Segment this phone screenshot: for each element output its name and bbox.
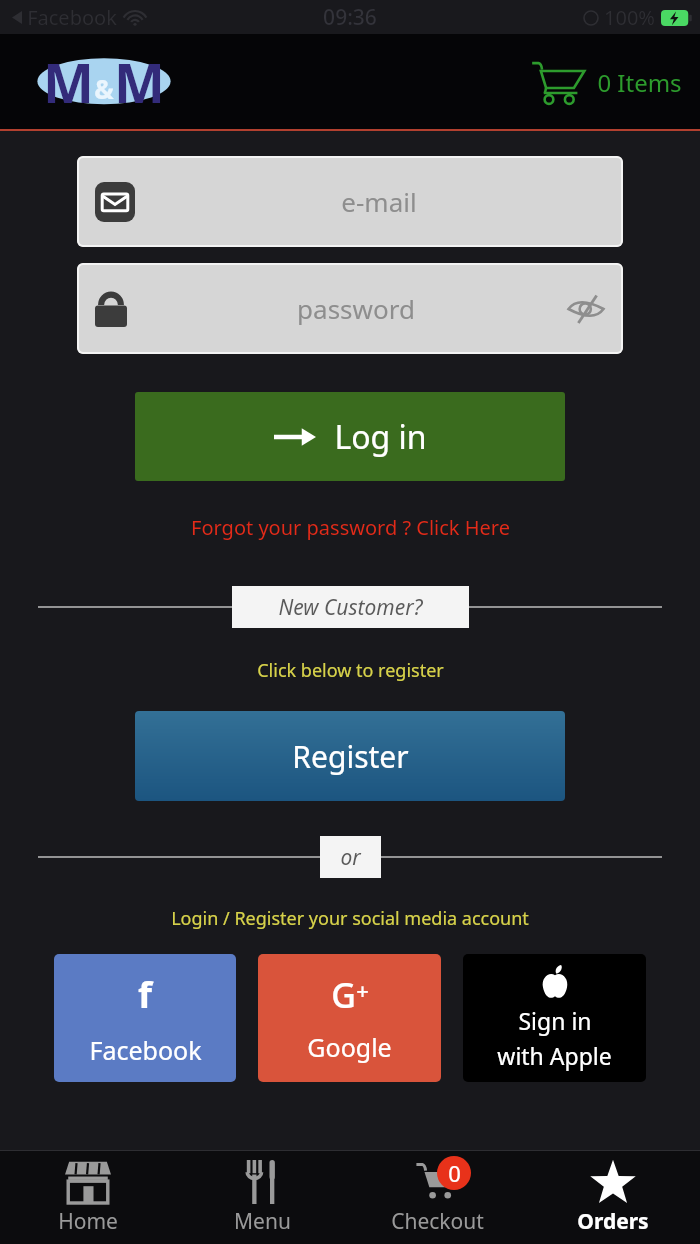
button[interactable]: e-mail xyxy=(77,156,623,247)
button[interactable]: Forgot your password ? Click Here xyxy=(185,512,516,543)
staticText: with Apple xyxy=(497,1040,612,1071)
staticText: e-mail xyxy=(153,184,605,219)
button[interactable]: 0 Items xyxy=(527,55,686,109)
staticText: Log in xyxy=(334,415,427,459)
staticText: M xyxy=(114,45,165,119)
button[interactable]: 0 xyxy=(350,1151,525,1244)
button[interactable]: Orders xyxy=(525,1151,700,1244)
button[interactable]: Register xyxy=(135,711,565,801)
staticText: + xyxy=(356,975,369,1005)
staticText: Checkout xyxy=(391,1207,484,1236)
staticText: Login / Register your social media accou… xyxy=(171,906,529,931)
staticText: 100% xyxy=(604,4,655,31)
staticText: & xyxy=(94,71,114,106)
button[interactable]: Show password xyxy=(567,295,605,323)
staticText: Google xyxy=(307,1030,392,1064)
staticText: 09:36 xyxy=(323,3,377,32)
staticText: password xyxy=(145,291,567,326)
staticText: Click below to register xyxy=(257,658,444,683)
button[interactable]: f xyxy=(54,954,236,1082)
staticText: Register xyxy=(292,736,409,777)
button[interactable]: Menu xyxy=(175,1151,350,1244)
button[interactable]: Sign in xyxy=(463,954,646,1082)
staticText: f xyxy=(138,970,152,1019)
staticText: M xyxy=(43,45,94,119)
staticText: Orders xyxy=(577,1207,649,1236)
staticText: Home xyxy=(58,1207,118,1236)
button[interactable]: G xyxy=(258,954,441,1082)
staticText: New Customer? xyxy=(278,593,423,622)
staticText: Menu xyxy=(234,1207,291,1236)
staticText: Facebook xyxy=(27,4,117,31)
staticText: 0 xyxy=(448,1158,461,1188)
staticText: Sign in xyxy=(518,1005,592,1036)
button[interactable]: Log in xyxy=(135,392,565,481)
button[interactable]: password xyxy=(77,263,623,354)
button[interactable]: Home xyxy=(0,1151,175,1244)
staticText: 0 Items xyxy=(597,66,682,99)
staticText: G xyxy=(331,972,356,1018)
staticText: or xyxy=(340,843,361,872)
staticText: Facebook xyxy=(89,1033,202,1067)
